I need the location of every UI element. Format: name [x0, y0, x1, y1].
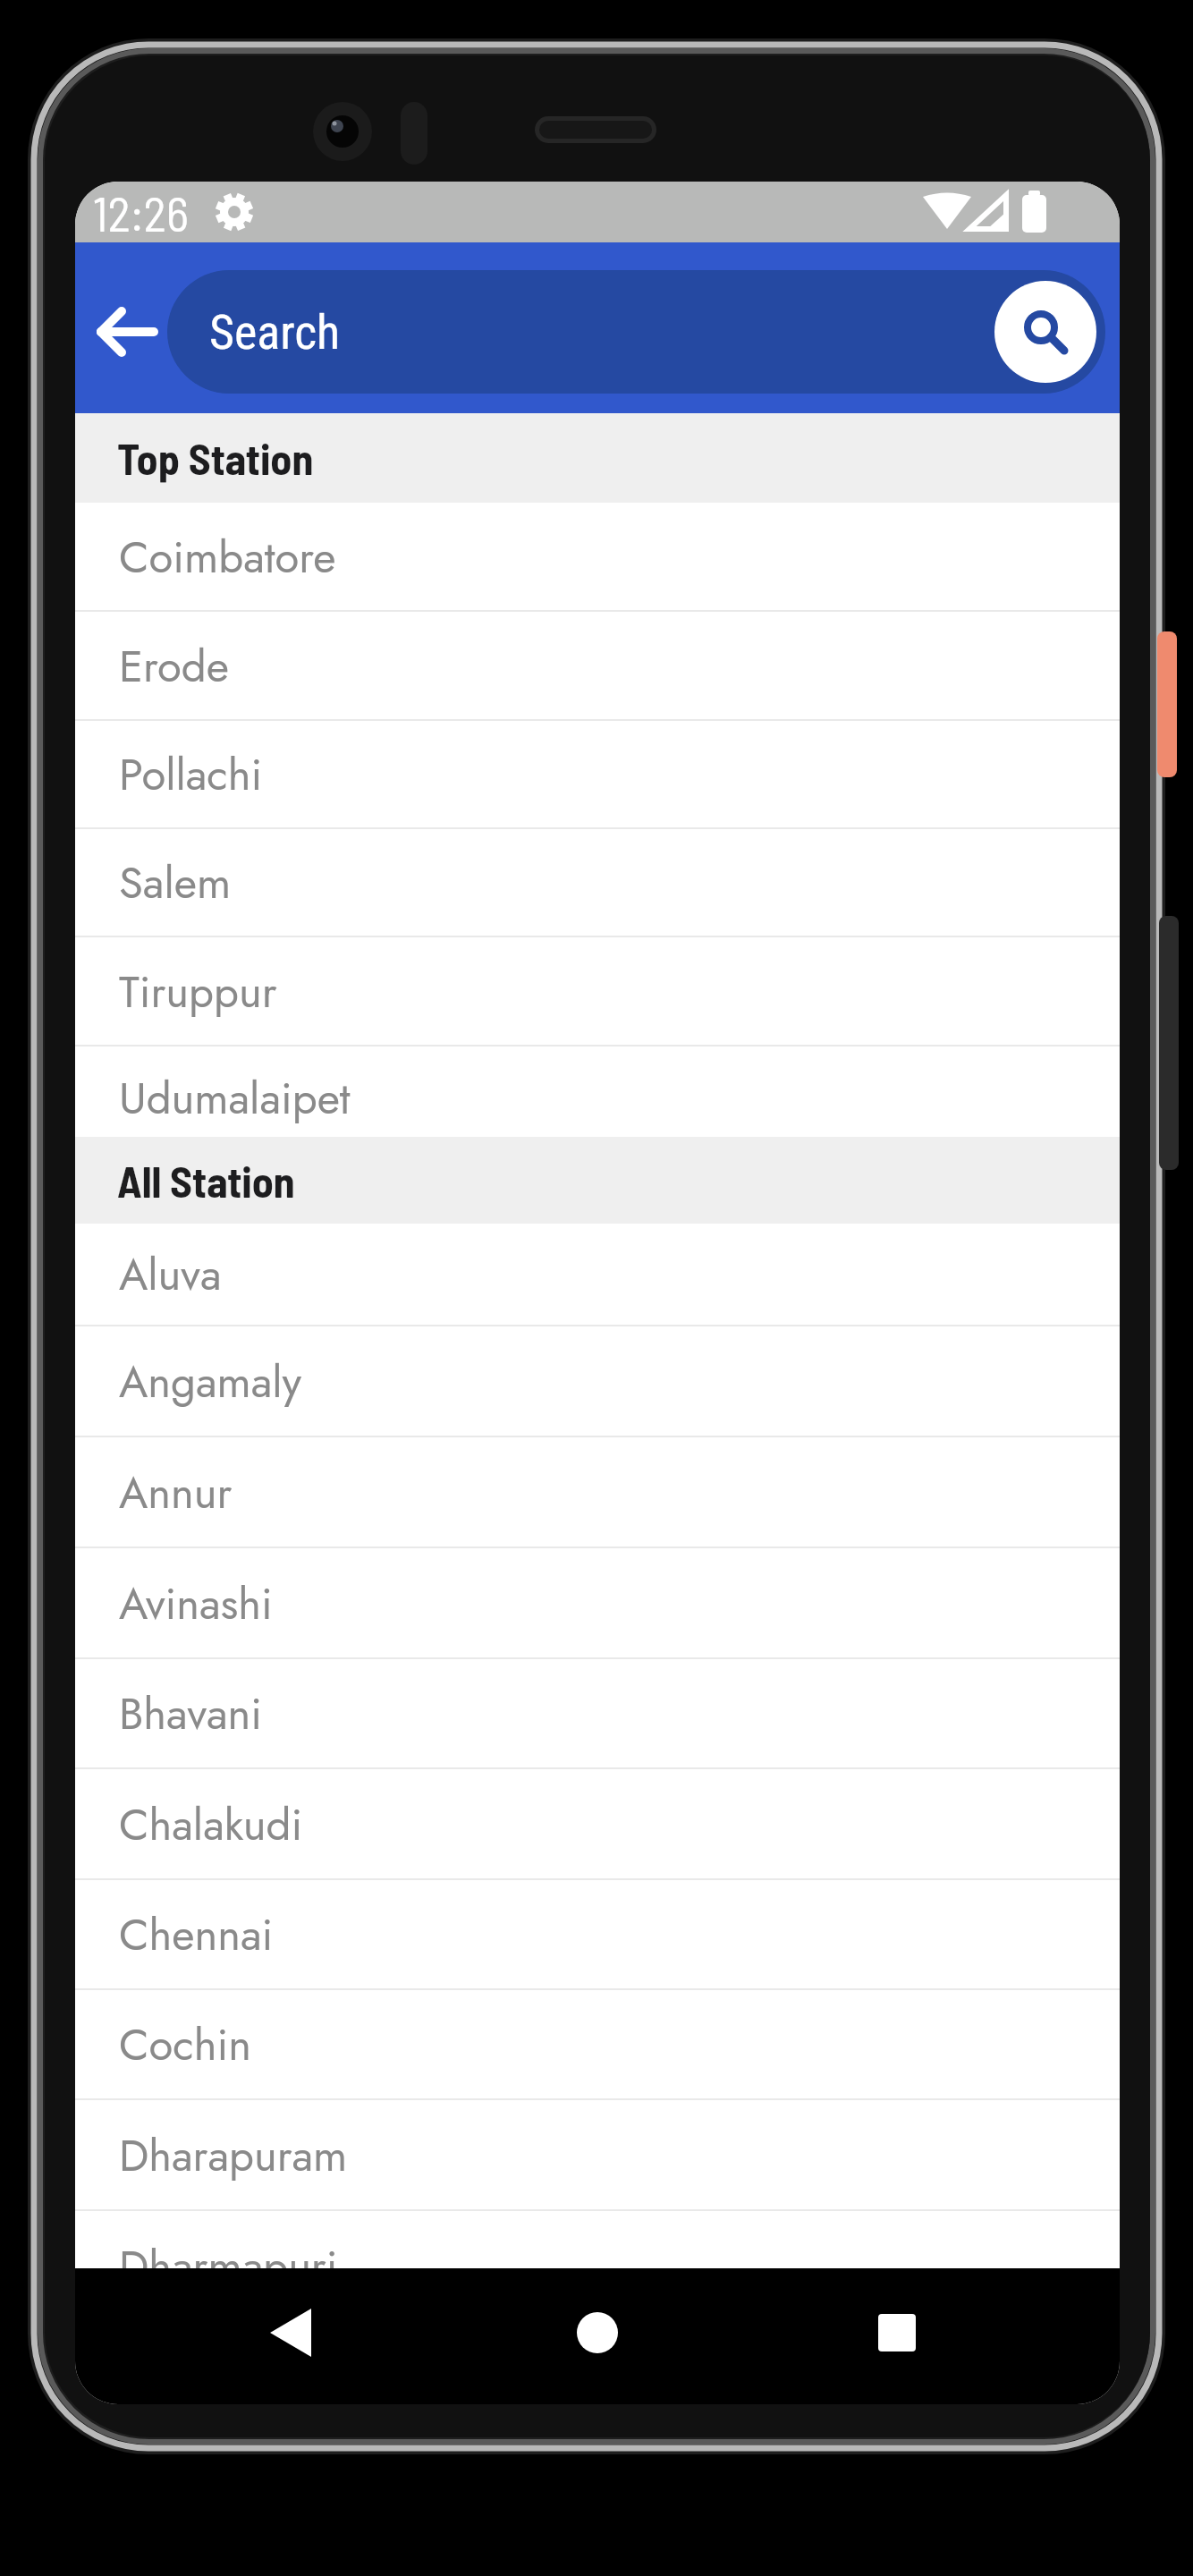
button[interactable] — [994, 281, 1096, 383]
button[interactable]: Aluva — [75, 1224, 1120, 1326]
button[interactable]: Erode — [75, 612, 1120, 721]
button[interactable]: Dharapuram — [75, 2100, 1120, 2211]
staticText: Angamaly — [119, 1351, 302, 1414]
staticText: Udumalaipet — [119, 1067, 351, 1131]
button[interactable] — [772, 2268, 1120, 2404]
staticText: Tiruppur — [119, 961, 277, 1024]
button[interactable]: Udumalaipet — [75, 1046, 1120, 1137]
staticText: Chalakudi — [119, 1793, 303, 1857]
button[interactable]: Dharmapuri — [75, 2211, 1120, 2322]
button[interactable]: Tiruppur — [75, 937, 1120, 1046]
button[interactable]: Angamaly — [75, 1326, 1120, 1437]
button[interactable]: Avinashi — [75, 1548, 1120, 1659]
button[interactable]: Chalakudi — [75, 1769, 1120, 1880]
staticText: Avinashi — [119, 1572, 273, 1636]
button[interactable] — [424, 2268, 772, 2404]
staticText: Top Station — [117, 432, 314, 484]
staticText: 12:26 — [93, 183, 189, 241]
staticText: Cochin — [119, 2013, 251, 2077]
staticText: Dharmapuri — [119, 2235, 338, 2299]
staticText: Pollachi — [119, 743, 263, 807]
staticText: Annur — [119, 1462, 233, 1525]
staticText: Search — [209, 304, 341, 360]
staticText: All Station — [117, 1155, 295, 1207]
staticText: Coimbatore — [119, 526, 336, 589]
button[interactable]: Bhavani — [75, 1659, 1120, 1769]
button[interactable]: Annur — [75, 1437, 1120, 1548]
staticText: Chennai — [119, 1903, 274, 1967]
button[interactable] — [91, 296, 163, 368]
staticText: Salem — [119, 852, 232, 915]
button[interactable]: Cochin — [75, 1990, 1120, 2100]
staticText: Bhavani — [119, 1682, 262, 1746]
staticText: Dharapuram — [119, 2124, 348, 2188]
button[interactable] — [75, 2268, 424, 2404]
button[interactable]: Salem — [75, 829, 1120, 937]
button[interactable]: Pollachi — [75, 721, 1120, 829]
button[interactable]: Search — [167, 270, 1105, 394]
staticText: Erode — [119, 635, 229, 699]
button[interactable]: Chennai — [75, 1880, 1120, 1990]
button[interactable]: Coimbatore — [75, 503, 1120, 612]
staticText: Aluva — [119, 1243, 222, 1307]
